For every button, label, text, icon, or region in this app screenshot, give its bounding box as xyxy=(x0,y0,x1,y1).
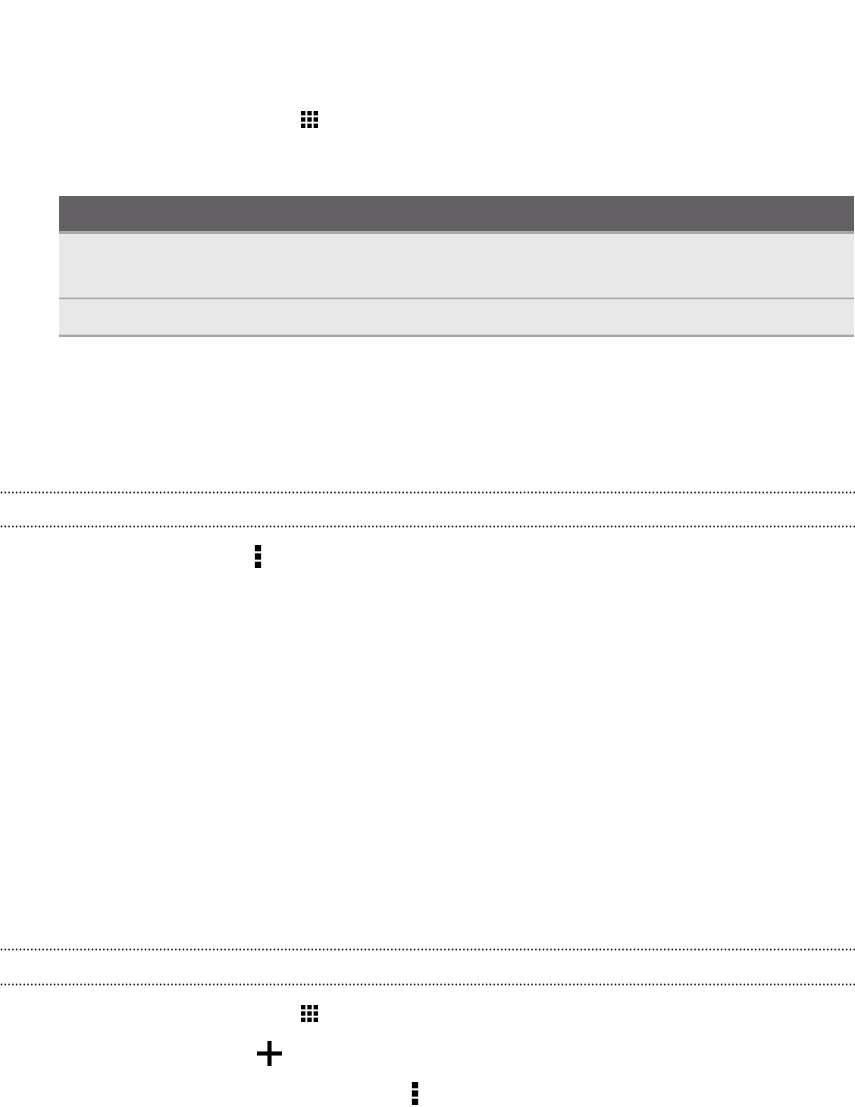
button[interactable]: All apps xyxy=(301,1005,318,1022)
button[interactable]: More options xyxy=(255,545,261,568)
button[interactable] xyxy=(59,234,854,300)
button[interactable]: More options xyxy=(412,1082,418,1105)
button[interactable]: Add xyxy=(257,1041,282,1066)
button[interactable] xyxy=(59,300,854,337)
button[interactable]: All apps xyxy=(301,111,318,128)
button[interactable] xyxy=(59,196,854,234)
